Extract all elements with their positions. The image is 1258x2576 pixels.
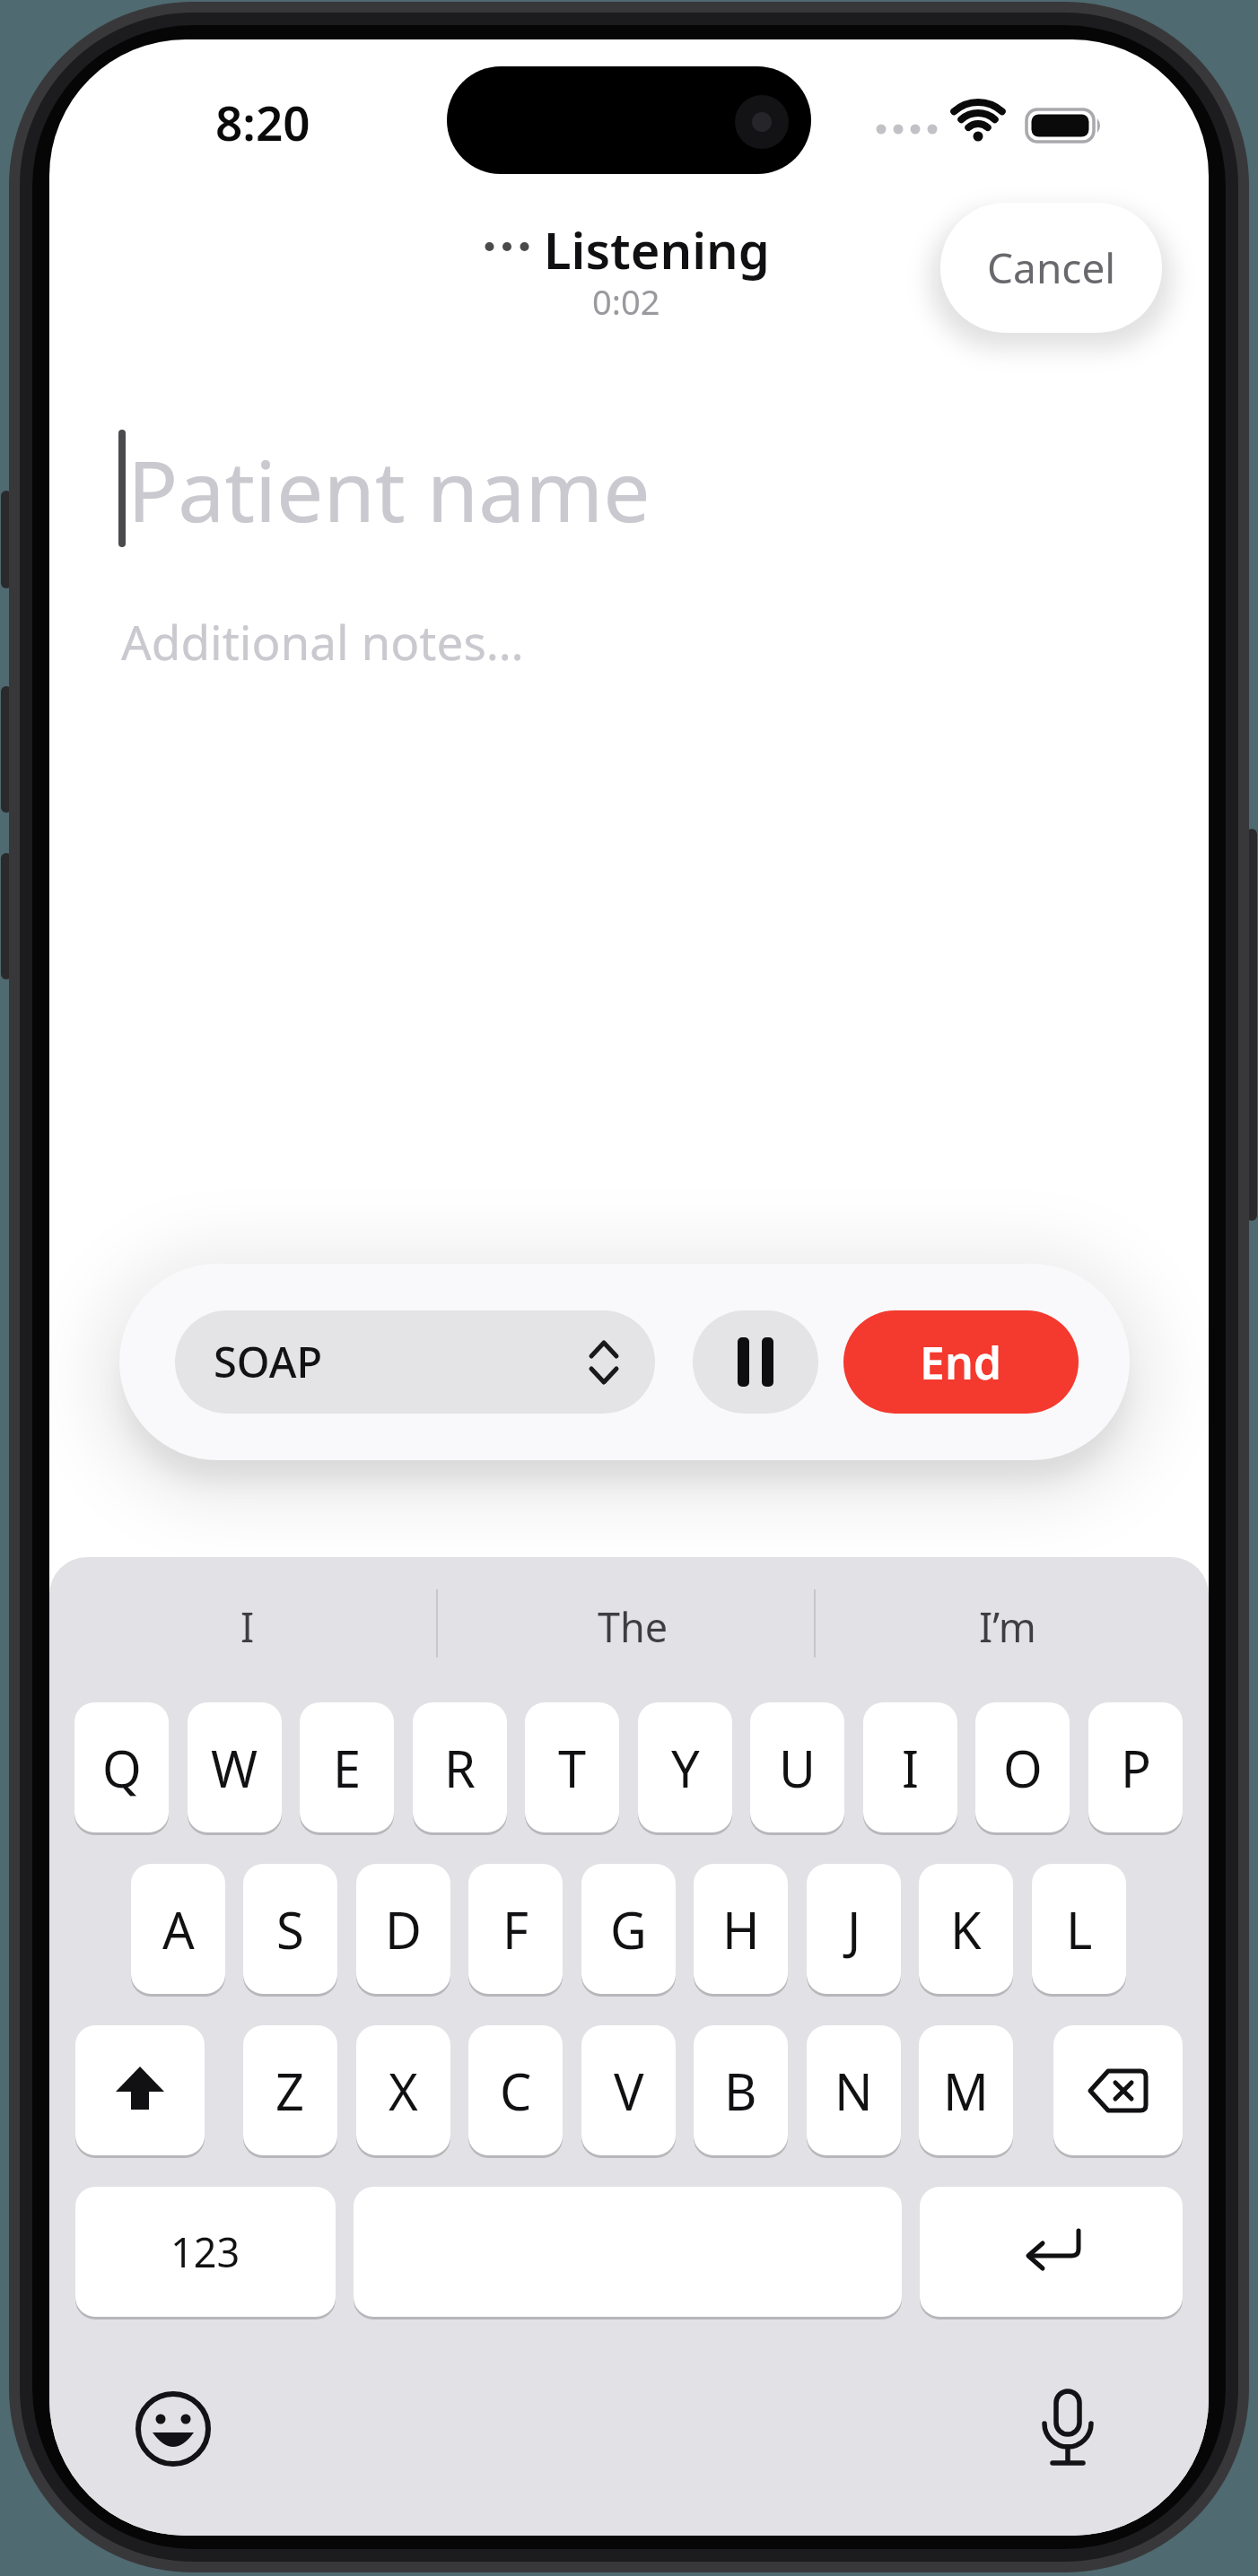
staticText: Listening [544, 215, 770, 283]
button[interactable]: Q [74, 1702, 169, 1832]
staticText: SOAP [214, 1333, 323, 1390]
button[interactable]: Patient name [127, 431, 773, 548]
button[interactable]: E [300, 1702, 394, 1832]
button[interactable]: Z [243, 2025, 337, 2155]
staticText: Y [671, 1734, 700, 1802]
staticText: R [444, 1734, 476, 1802]
button[interactable]: V [581, 2025, 676, 2155]
staticText: I [902, 1734, 919, 1802]
button[interactable] [75, 2025, 205, 2155]
button[interactable]: I [863, 1702, 957, 1832]
staticText: J [847, 1895, 861, 1963]
staticText: W [211, 1734, 258, 1802]
button[interactable]: U [750, 1702, 844, 1832]
staticText: V [614, 2057, 644, 2125]
staticText: Cancel [987, 239, 1116, 296]
staticText: M [943, 2057, 989, 2125]
button[interactable]: K [919, 1864, 1013, 1994]
button[interactable]: N [807, 2025, 901, 2155]
button[interactable] [1035, 2389, 1100, 2474]
staticText: U [779, 1734, 816, 1802]
staticText: Patient name [127, 433, 651, 547]
staticText: 123 [170, 2224, 240, 2279]
staticText: D [385, 1895, 422, 1963]
staticText: H [722, 1895, 760, 1963]
button[interactable]: M [919, 2025, 1013, 2155]
button[interactable]: H [694, 1864, 788, 1994]
button[interactable]: The [451, 1587, 814, 1666]
staticText: G [610, 1895, 647, 1963]
staticText: Z [275, 2057, 305, 2125]
staticText: S [276, 1895, 304, 1963]
button[interactable]: A [131, 1864, 225, 1994]
staticText: 0:02 [592, 278, 660, 325]
button[interactable]: J [807, 1864, 901, 1994]
staticText: K [950, 1895, 982, 1963]
staticText: The [598, 1599, 668, 1654]
staticText: I [240, 1599, 255, 1654]
staticText: T [558, 1734, 587, 1802]
button[interactable]: X [356, 2025, 450, 2155]
staticText: End [920, 1332, 1002, 1393]
button[interactable]: W [188, 1702, 282, 1832]
button[interactable] [175, 1310, 655, 1414]
button[interactable]: End [843, 1310, 1079, 1414]
staticText: L [1066, 1895, 1093, 1963]
button[interactable]: D [356, 1864, 450, 1994]
button[interactable]: G [581, 1864, 676, 1994]
staticText: C [500, 2057, 532, 2125]
button[interactable]: I’m [826, 1587, 1189, 1666]
button[interactable]: F [468, 1864, 563, 1994]
button[interactable] [1053, 2025, 1183, 2155]
staticText: B [724, 2057, 757, 2125]
staticText: P [1121, 1734, 1151, 1802]
staticText: X [389, 2057, 418, 2125]
button[interactable]: T [525, 1702, 619, 1832]
button[interactable]: O [975, 1702, 1070, 1832]
button[interactable]: Cancel [940, 203, 1162, 333]
button[interactable]: 123 [75, 2187, 336, 2317]
button[interactable]: Additional notes… [121, 601, 695, 682]
staticText: 8:20 [215, 90, 310, 154]
button[interactable]: L [1032, 1864, 1126, 1994]
button[interactable] [920, 2187, 1183, 2317]
button[interactable]: Y [638, 1702, 732, 1832]
button[interactable]: P [1088, 1702, 1183, 1832]
staticText: E [333, 1734, 362, 1802]
staticText: Additional notes… [121, 609, 524, 674]
staticText: Q [102, 1734, 142, 1802]
button[interactable] [135, 2391, 211, 2467]
button[interactable]: S [243, 1864, 337, 1994]
button[interactable] [693, 1310, 818, 1414]
button[interactable]: C [468, 2025, 563, 2155]
staticText: F [502, 1895, 529, 1963]
button[interactable]: B [694, 2025, 788, 2155]
staticText: O [1003, 1734, 1043, 1802]
button[interactable]: I [66, 1587, 429, 1666]
staticText: A [162, 1895, 195, 1963]
staticText: I’m [979, 1599, 1036, 1654]
button[interactable]: R [413, 1702, 507, 1832]
staticText: N [834, 2057, 873, 2125]
